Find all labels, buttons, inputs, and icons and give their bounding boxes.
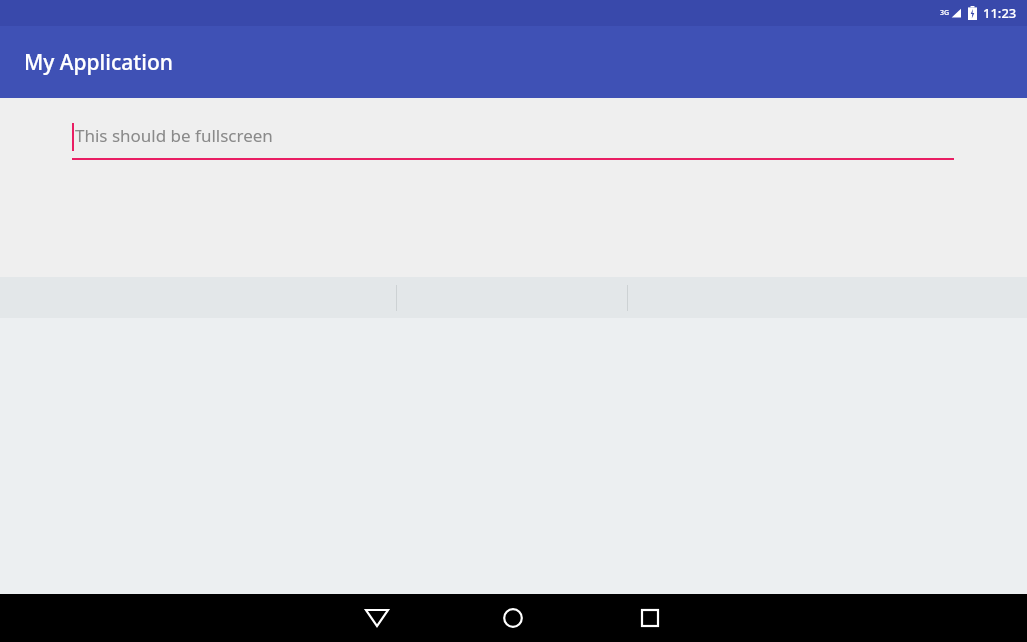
button[interactable]: y: [478, 607, 538, 642]
button[interactable]: Home: [476, 594, 550, 642]
button[interactable]: t: [386, 607, 446, 642]
button[interactable]: This should be fullscreen: [72, 120, 954, 160]
staticText: 3G: [940, 8, 950, 18]
staticText: 11:23: [983, 4, 1017, 22]
button[interactable]: Back: [340, 594, 414, 642]
staticText: This should be fullscreen: [75, 124, 273, 147]
staticText: My Application: [24, 48, 173, 77]
staticText: y: [502, 621, 514, 642]
button[interactable]: Recents: [613, 594, 687, 642]
